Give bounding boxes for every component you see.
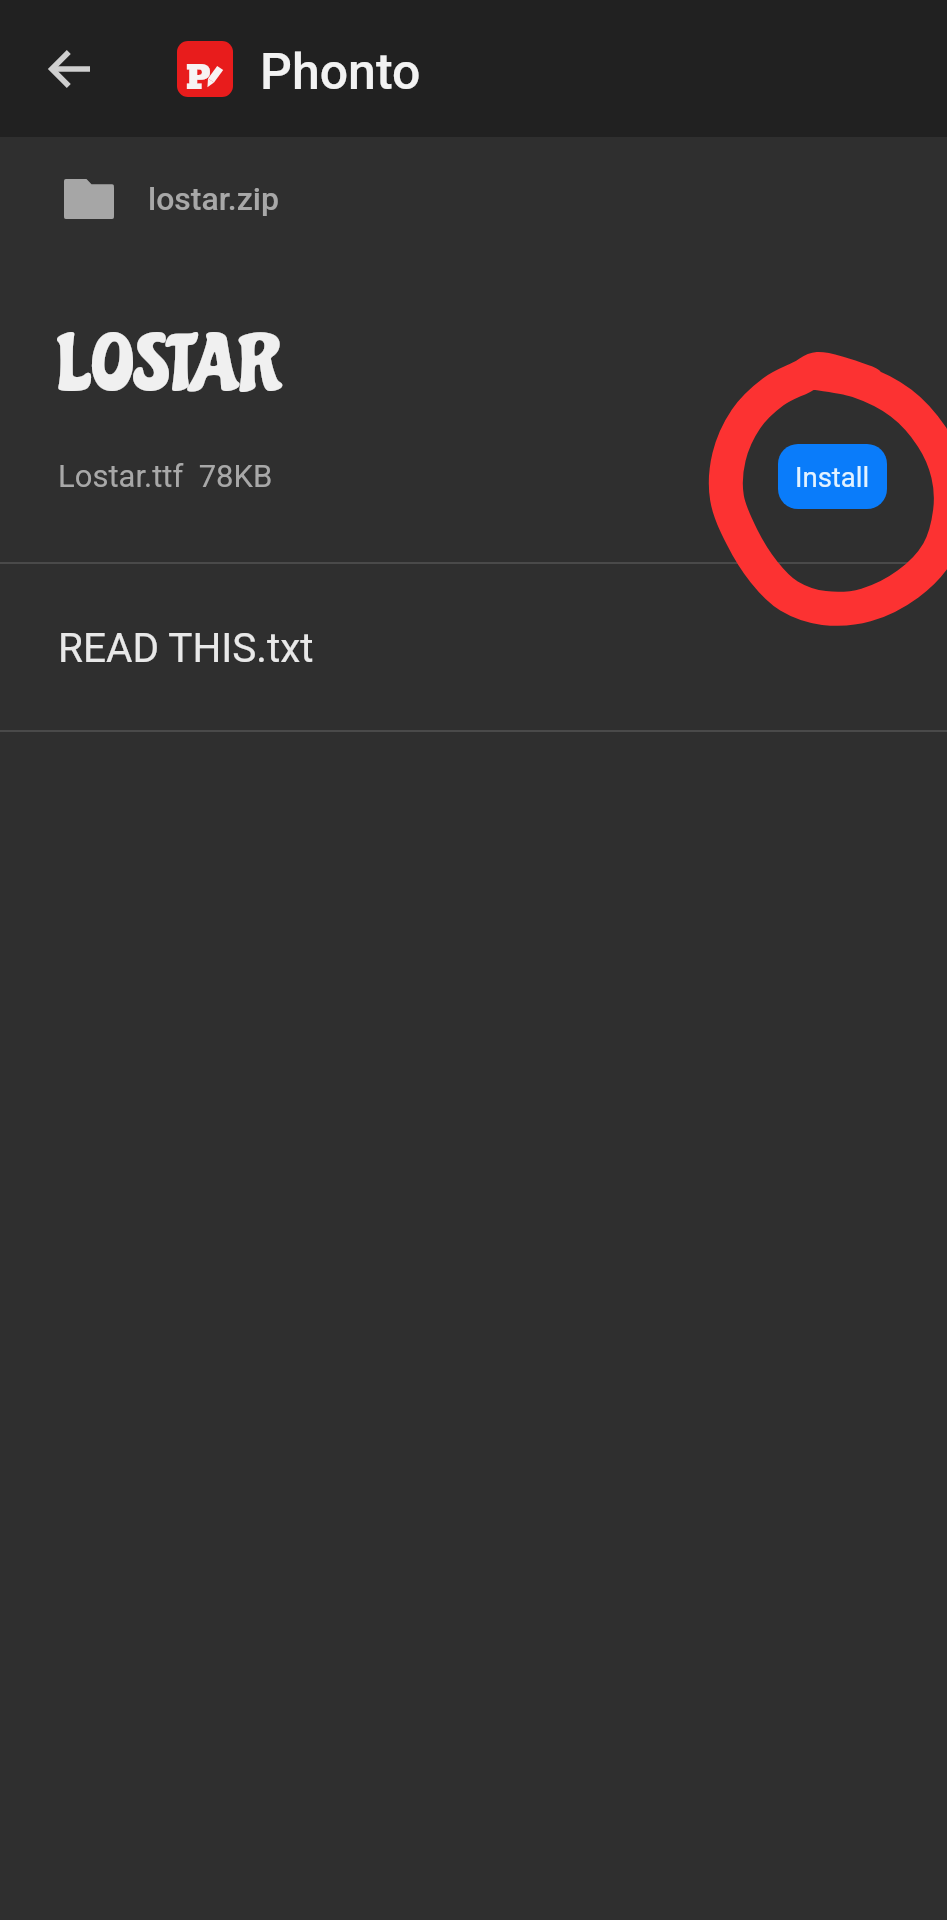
button[interactable]: lostar.zip	[0, 130, 947, 267]
staticText: lostar.zip	[148, 180, 279, 218]
button[interactable]: Install	[778, 444, 887, 509]
staticText: LOSTAR	[57, 319, 281, 411]
button[interactable]: Back	[21, 21, 117, 117]
button[interactable]: LOSTAR	[0, 274, 947, 562]
staticText: Install	[795, 461, 870, 493]
staticText: READ THIS.txt	[58, 624, 314, 671]
staticText: Phonto	[260, 43, 421, 102]
staticText: Lostar.ttf 78KB	[58, 458, 273, 494]
staticText: P	[186, 53, 211, 97]
button[interactable]: READ THIS.txt	[0, 564, 947, 730]
